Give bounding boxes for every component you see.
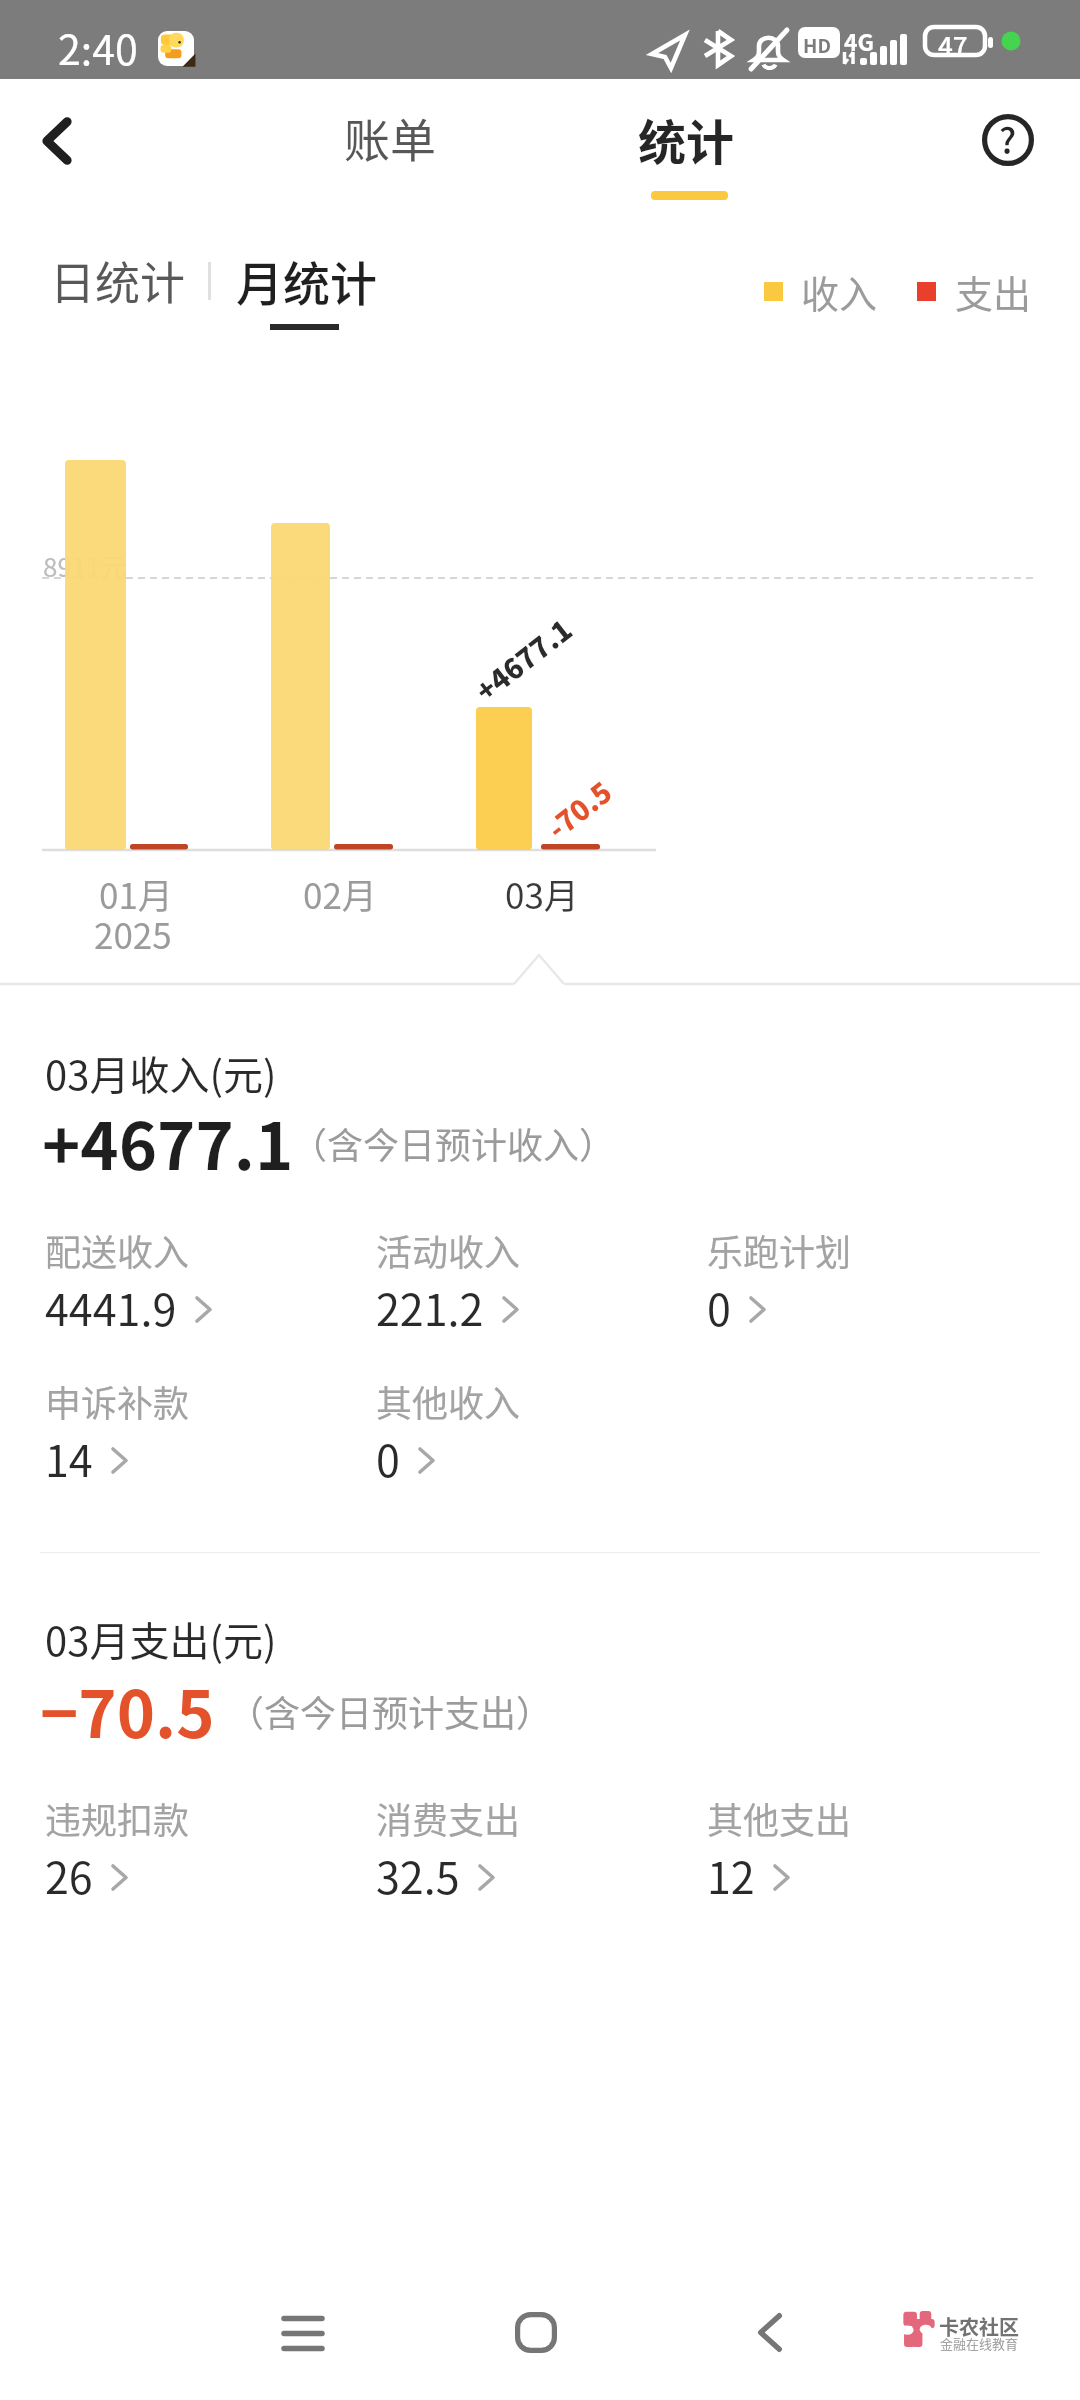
staticText: 221.2 <box>376 1276 484 1338</box>
staticText: 0 <box>376 1427 400 1489</box>
staticText: 配送收入 <box>45 1224 190 1276</box>
button[interactable]: 活动收入 <box>376 1224 676 1338</box>
staticText: 乐跑计划 <box>707 1224 852 1276</box>
staticText: ? <box>999 113 1017 164</box>
button[interactable]: 其他收入 <box>376 1375 676 1489</box>
staticText: （含今日预计支出） <box>228 1685 553 1737</box>
button[interactable]: 申诉补款 <box>45 1375 345 1489</box>
staticText: 8911元 <box>43 547 127 585</box>
staticText: HD <box>803 31 831 59</box>
staticText: 4441.9 <box>45 1276 177 1338</box>
staticText: 32.5 <box>376 1844 460 1906</box>
button[interactable]: 违规扣款 <box>45 1792 345 1906</box>
staticText: （含今日预计收入） <box>291 1117 616 1169</box>
button[interactable]: Menu <box>249 2279 357 2387</box>
button[interactable]: 乐跑计划 <box>707 1224 1007 1338</box>
staticText: 26 <box>45 1844 93 1906</box>
staticText: 卡农社区 <box>939 2312 1019 2341</box>
staticText: 其他收入 <box>376 1375 521 1427</box>
staticText: -70.5 <box>538 771 620 848</box>
button[interactable]: 配送收入 <box>45 1224 345 1338</box>
button[interactable]: 消费支出 <box>376 1792 676 1906</box>
staticText: +4677.1 <box>466 609 581 710</box>
button[interactable]: Back <box>12 96 102 186</box>
button[interactable]: 统计 <box>618 96 756 206</box>
staticText: 日统计 <box>50 248 186 308</box>
staticText: 4G <box>844 24 875 57</box>
button[interactable]: 日统计 <box>50 248 190 308</box>
staticText: 活动收入 <box>376 1224 521 1276</box>
staticText: 账单 <box>344 104 436 171</box>
button[interactable]: 月统计 <box>236 244 386 340</box>
staticText: 消费支出 <box>376 1792 521 1844</box>
staticText: 03月 <box>505 868 579 919</box>
staticText: 12 <box>707 1844 755 1906</box>
staticText: −70.5 <box>40 1663 215 1757</box>
staticText: 申诉补款 <box>45 1375 190 1427</box>
staticText: 47 <box>938 26 968 64</box>
button[interactable]: Back <box>716 2278 824 2386</box>
button[interactable]: 其他支出 <box>707 1792 1007 1906</box>
button[interactable]: 账单 <box>325 95 455 179</box>
button[interactable]: Home <box>482 2278 590 2386</box>
staticText: +4677.1 <box>42 1095 294 1189</box>
button[interactable]: Help <box>963 95 1052 184</box>
staticText: 03月收入(元) <box>45 1044 277 1102</box>
staticText: 统计 <box>638 104 735 174</box>
staticText: 金融在线教育 <box>940 2334 1019 2353</box>
staticText: 03月支出(元) <box>45 1610 277 1668</box>
staticText: 2:40 <box>58 17 138 76</box>
staticText: 01月 <box>99 868 173 919</box>
staticText: 其他支出 <box>707 1792 852 1844</box>
staticText: 2025 <box>94 908 172 959</box>
staticText: 月统计 <box>236 246 377 314</box>
staticText: 0 <box>707 1276 731 1338</box>
staticText: 14 <box>45 1427 93 1489</box>
staticText: 02月 <box>303 868 377 919</box>
staticText: 收入 <box>801 264 878 319</box>
staticText: 违规扣款 <box>45 1792 190 1844</box>
staticText: 支出 <box>955 264 1032 319</box>
